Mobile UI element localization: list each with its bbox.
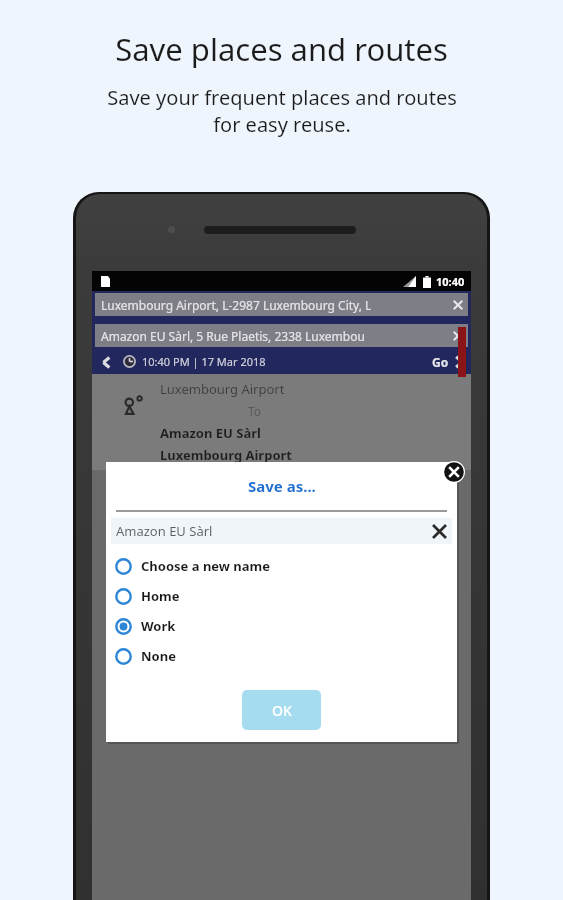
staticText: Luxembourg Airport [160,446,292,464]
staticText: Amazon EU Sàrl, 5 Rue Plaetis, 2338 Luxe… [101,328,449,344]
button[interactable]: Home [115,581,457,611]
staticText: Luxembourg Airport [160,380,285,398]
staticText: Save your frequent places and routes for… [107,84,457,138]
staticText: Choose a new name [141,557,271,575]
staticText: To [248,403,262,419]
button[interactable]: Luxembourg Airport, L-2987 Luxembourg Ci… [95,293,468,316]
button[interactable]: Work [115,611,457,641]
staticText: Save places and routes [115,28,448,70]
button[interactable]: Amazon EU Sàrl, 5 Rue Plaetis, 2338 Luxe… [95,324,468,347]
staticText: Home [141,587,180,605]
button[interactable]: Go [432,354,466,370]
staticText: Luxembourg Airport, L-2987 Luxembourg Ci… [101,297,449,313]
other: Clear [452,330,464,342]
button[interactable]: Choose a new name [115,551,457,581]
other: Clear text [433,525,446,538]
staticText: Amazon EU Sàrl [116,522,433,540]
staticText: 10:40 [436,274,465,289]
staticText: OK [272,701,292,720]
other: Clear [452,299,464,311]
staticText: Amazon EU Sàrl [160,424,261,442]
button[interactable]: None [115,641,457,671]
staticText: 10:40 PM | 17 Mar 2018 [142,354,266,369]
button[interactable]: Amazon EU Sàrl [116,518,446,544]
staticText: Work [141,617,176,635]
button[interactable]: Save as... [248,476,316,496]
staticText: Go [432,354,449,370]
button[interactable]: Previous [97,353,115,371]
button[interactable]: OK [242,690,321,730]
button[interactable]: Close [443,461,465,483]
staticText: None [141,647,176,665]
